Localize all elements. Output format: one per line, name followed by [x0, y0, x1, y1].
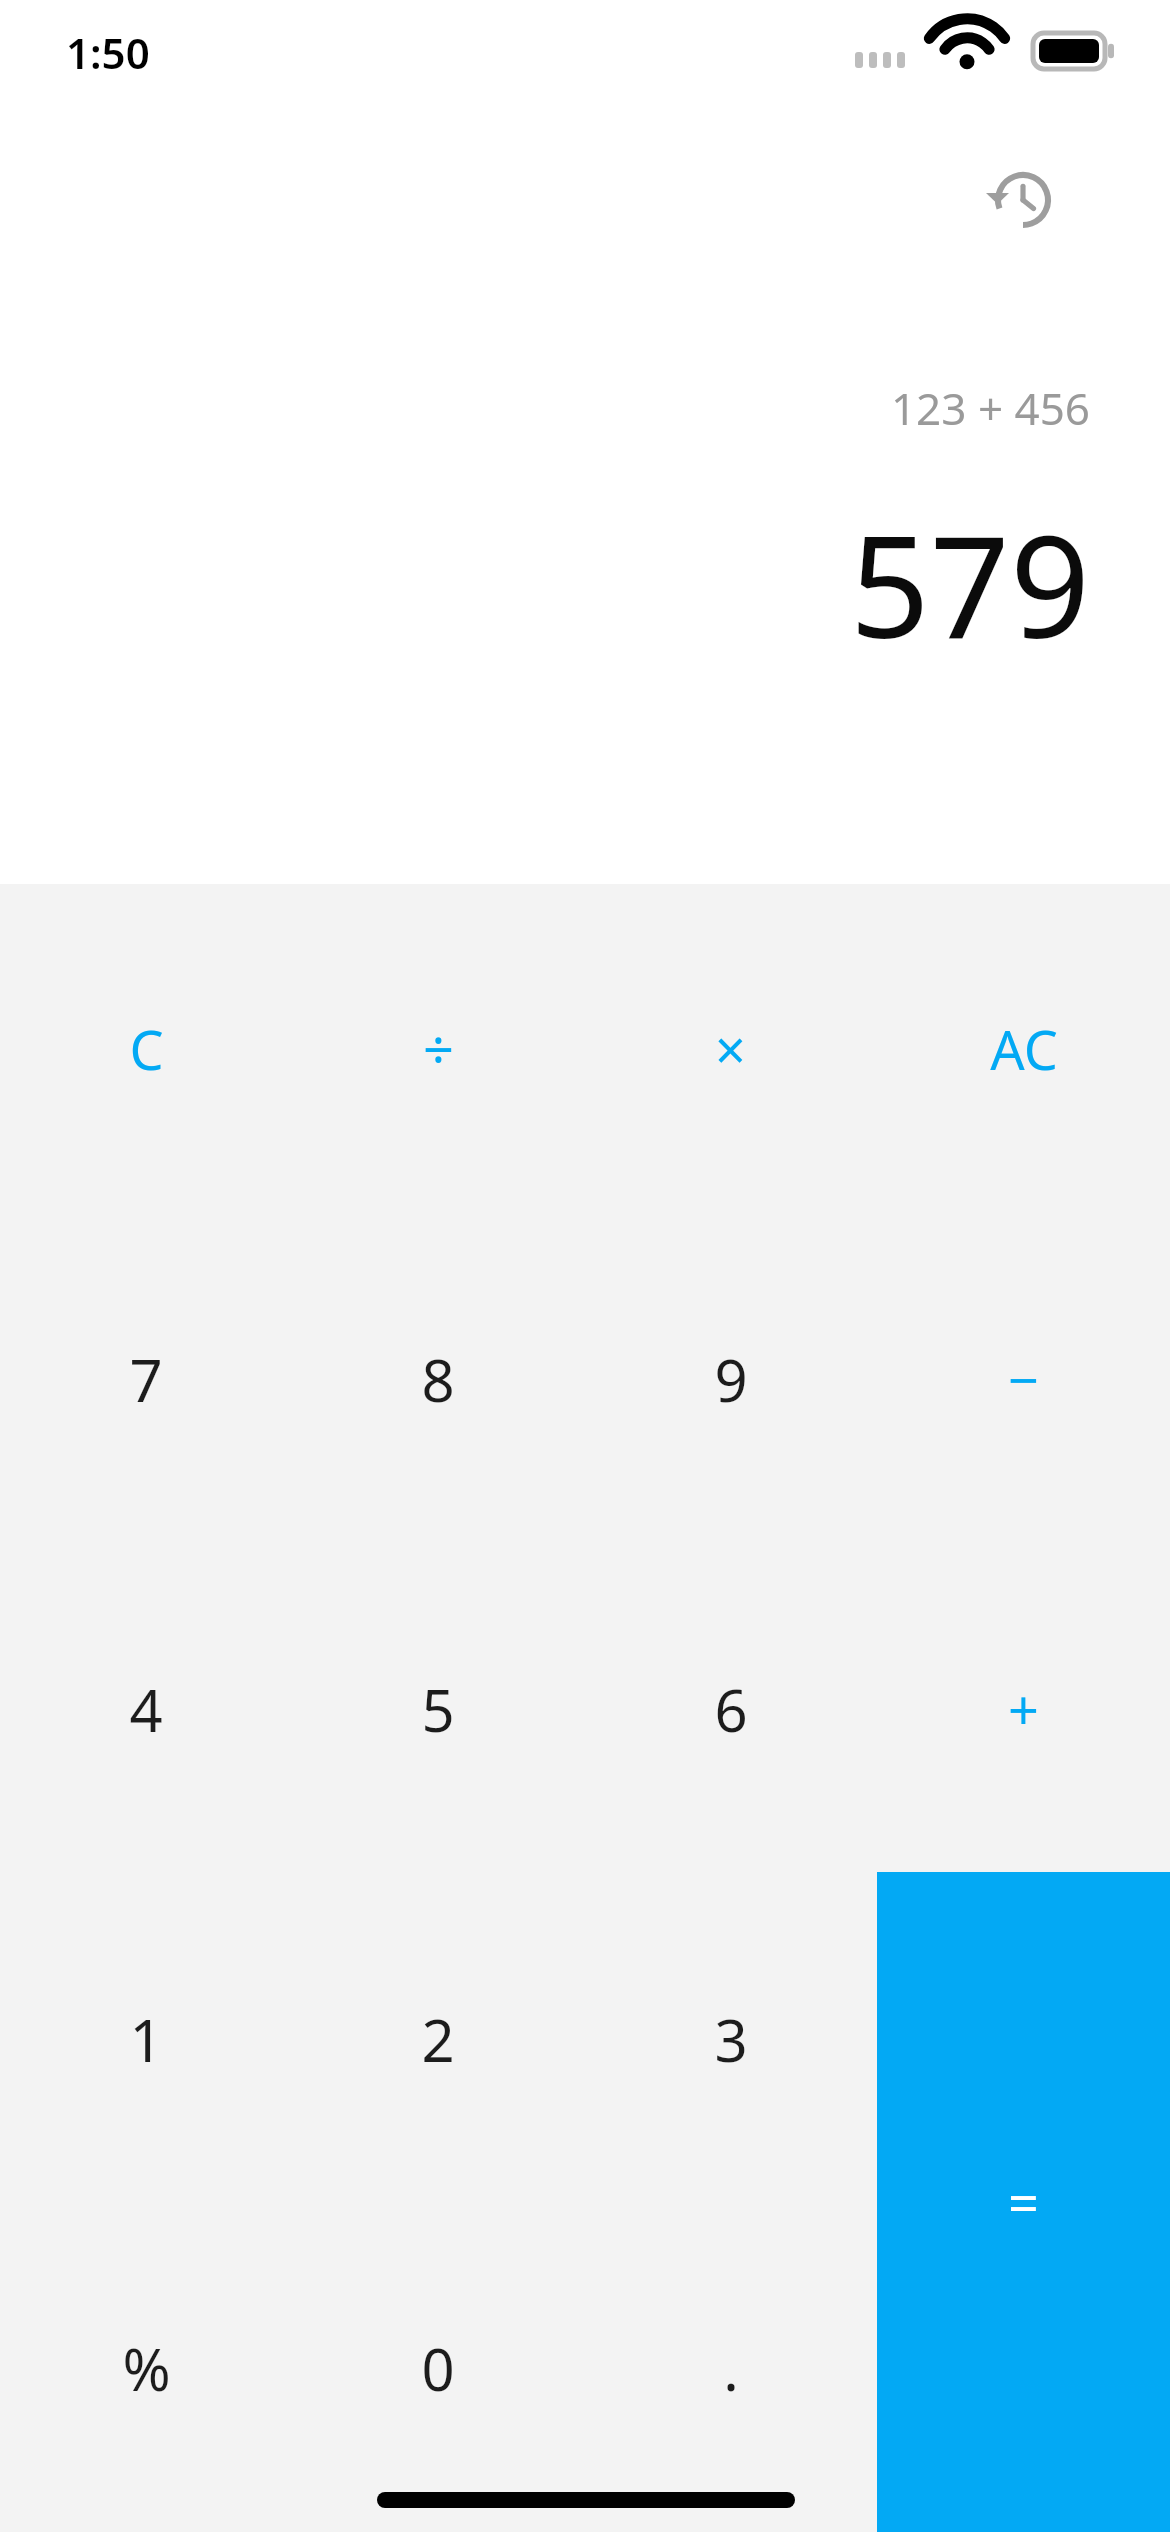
- button[interactable]: 7: [0, 1214, 292, 1544]
- staticText: 1: [129, 2000, 163, 2079]
- button[interactable]: AC: [877, 884, 1170, 1214]
- staticText: 579: [849, 488, 1090, 679]
- button[interactable]: =: [877, 1872, 1170, 2532]
- button[interactable]: +: [877, 1544, 1170, 1874]
- staticText: +: [1008, 1672, 1039, 1746]
- staticText: ×: [715, 1012, 746, 1086]
- button[interactable]: 1: [0, 1874, 292, 2204]
- staticText: 5: [421, 1670, 455, 1749]
- staticText: 9: [714, 1340, 748, 1419]
- staticText: C: [129, 1012, 164, 1086]
- staticText: 3: [714, 2000, 748, 2079]
- staticText: 7: [129, 1340, 163, 1419]
- button[interactable]: C: [0, 884, 292, 1214]
- staticText: −: [1008, 1342, 1039, 1416]
- staticText: 4: [129, 1670, 163, 1749]
- staticText: 8: [421, 1340, 455, 1419]
- button[interactable]: 0: [292, 2204, 584, 2532]
- button[interactable]: 9: [584, 1214, 877, 1544]
- staticText: 123 + 456: [890, 378, 1090, 438]
- button[interactable]: 4: [0, 1544, 292, 1874]
- button[interactable]: 8: [292, 1214, 584, 1544]
- button[interactable]: History: [975, 152, 1071, 248]
- staticText: =: [1008, 2165, 1039, 2239]
- staticText: AC: [990, 1012, 1058, 1086]
- button[interactable]: .: [584, 2204, 877, 2532]
- staticText: 2: [421, 2000, 455, 2079]
- staticText: 6: [714, 1670, 748, 1749]
- button[interactable]: 2: [292, 1874, 584, 2204]
- button[interactable]: −: [877, 1214, 1170, 1544]
- staticText: .: [723, 2329, 739, 2408]
- button[interactable]: %: [0, 2204, 292, 2532]
- staticText: 0: [421, 2329, 455, 2408]
- staticText: ÷: [423, 1012, 454, 1086]
- button[interactable]: ÷: [292, 884, 584, 1214]
- button[interactable]: ×: [584, 884, 877, 1214]
- button[interactable]: 5: [292, 1544, 584, 1874]
- button[interactable]: 3: [584, 1874, 877, 2204]
- staticText: %: [122, 2329, 171, 2408]
- staticText: 1:50: [66, 24, 150, 81]
- button[interactable]: 6: [584, 1544, 877, 1874]
